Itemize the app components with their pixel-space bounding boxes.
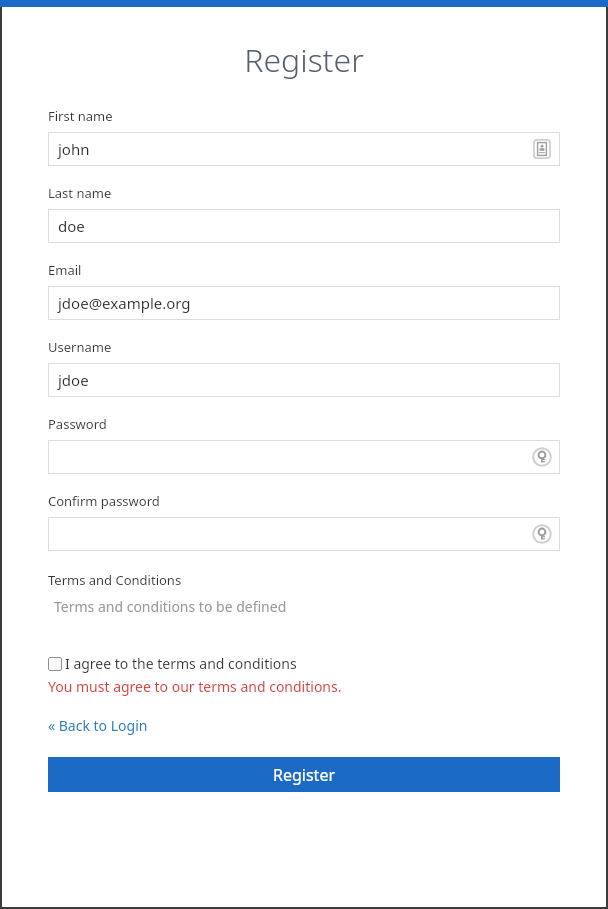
button[interactable]: Show password manager: [532, 447, 552, 467]
button[interactable]: john: [48, 132, 560, 166]
button[interactable]: jdoe: [48, 363, 560, 397]
staticText: Confirm password: [48, 492, 160, 510]
staticText: jdoe: [58, 370, 89, 390]
button[interactable]: Show password manager: [48, 440, 560, 474]
button[interactable]: « Back to Login: [48, 716, 148, 735]
button[interactable]: Show password manager: [532, 524, 552, 544]
button[interactable]: Show password manager: [48, 517, 560, 551]
staticText: Email: [48, 261, 82, 279]
staticText: Terms and Conditions: [48, 571, 182, 589]
staticText: Terms and conditions to be defined: [54, 597, 287, 616]
staticText: First name: [48, 107, 113, 125]
staticText: « Back to Login: [48, 716, 148, 735]
staticText: I agree to the terms and conditions: [65, 654, 297, 673]
button[interactable]: doe: [48, 209, 560, 243]
button[interactable]: Register: [48, 757, 560, 792]
staticText: jdoe@example.org: [58, 293, 191, 313]
staticText: Register: [273, 764, 336, 786]
staticText: Last name: [48, 184, 112, 202]
staticText: You must agree to our terms and conditio…: [48, 677, 342, 696]
button[interactable]: I agree to the terms and conditions: [48, 654, 297, 673]
staticText: Password: [48, 415, 107, 433]
button[interactable]: jdoe@example.org: [48, 286, 560, 320]
staticText: Username: [48, 338, 112, 356]
staticText: doe: [58, 216, 85, 236]
staticText: john: [58, 139, 90, 159]
button[interactable]: Autofill contact: [532, 139, 552, 159]
staticText: Register: [48, 38, 560, 82]
